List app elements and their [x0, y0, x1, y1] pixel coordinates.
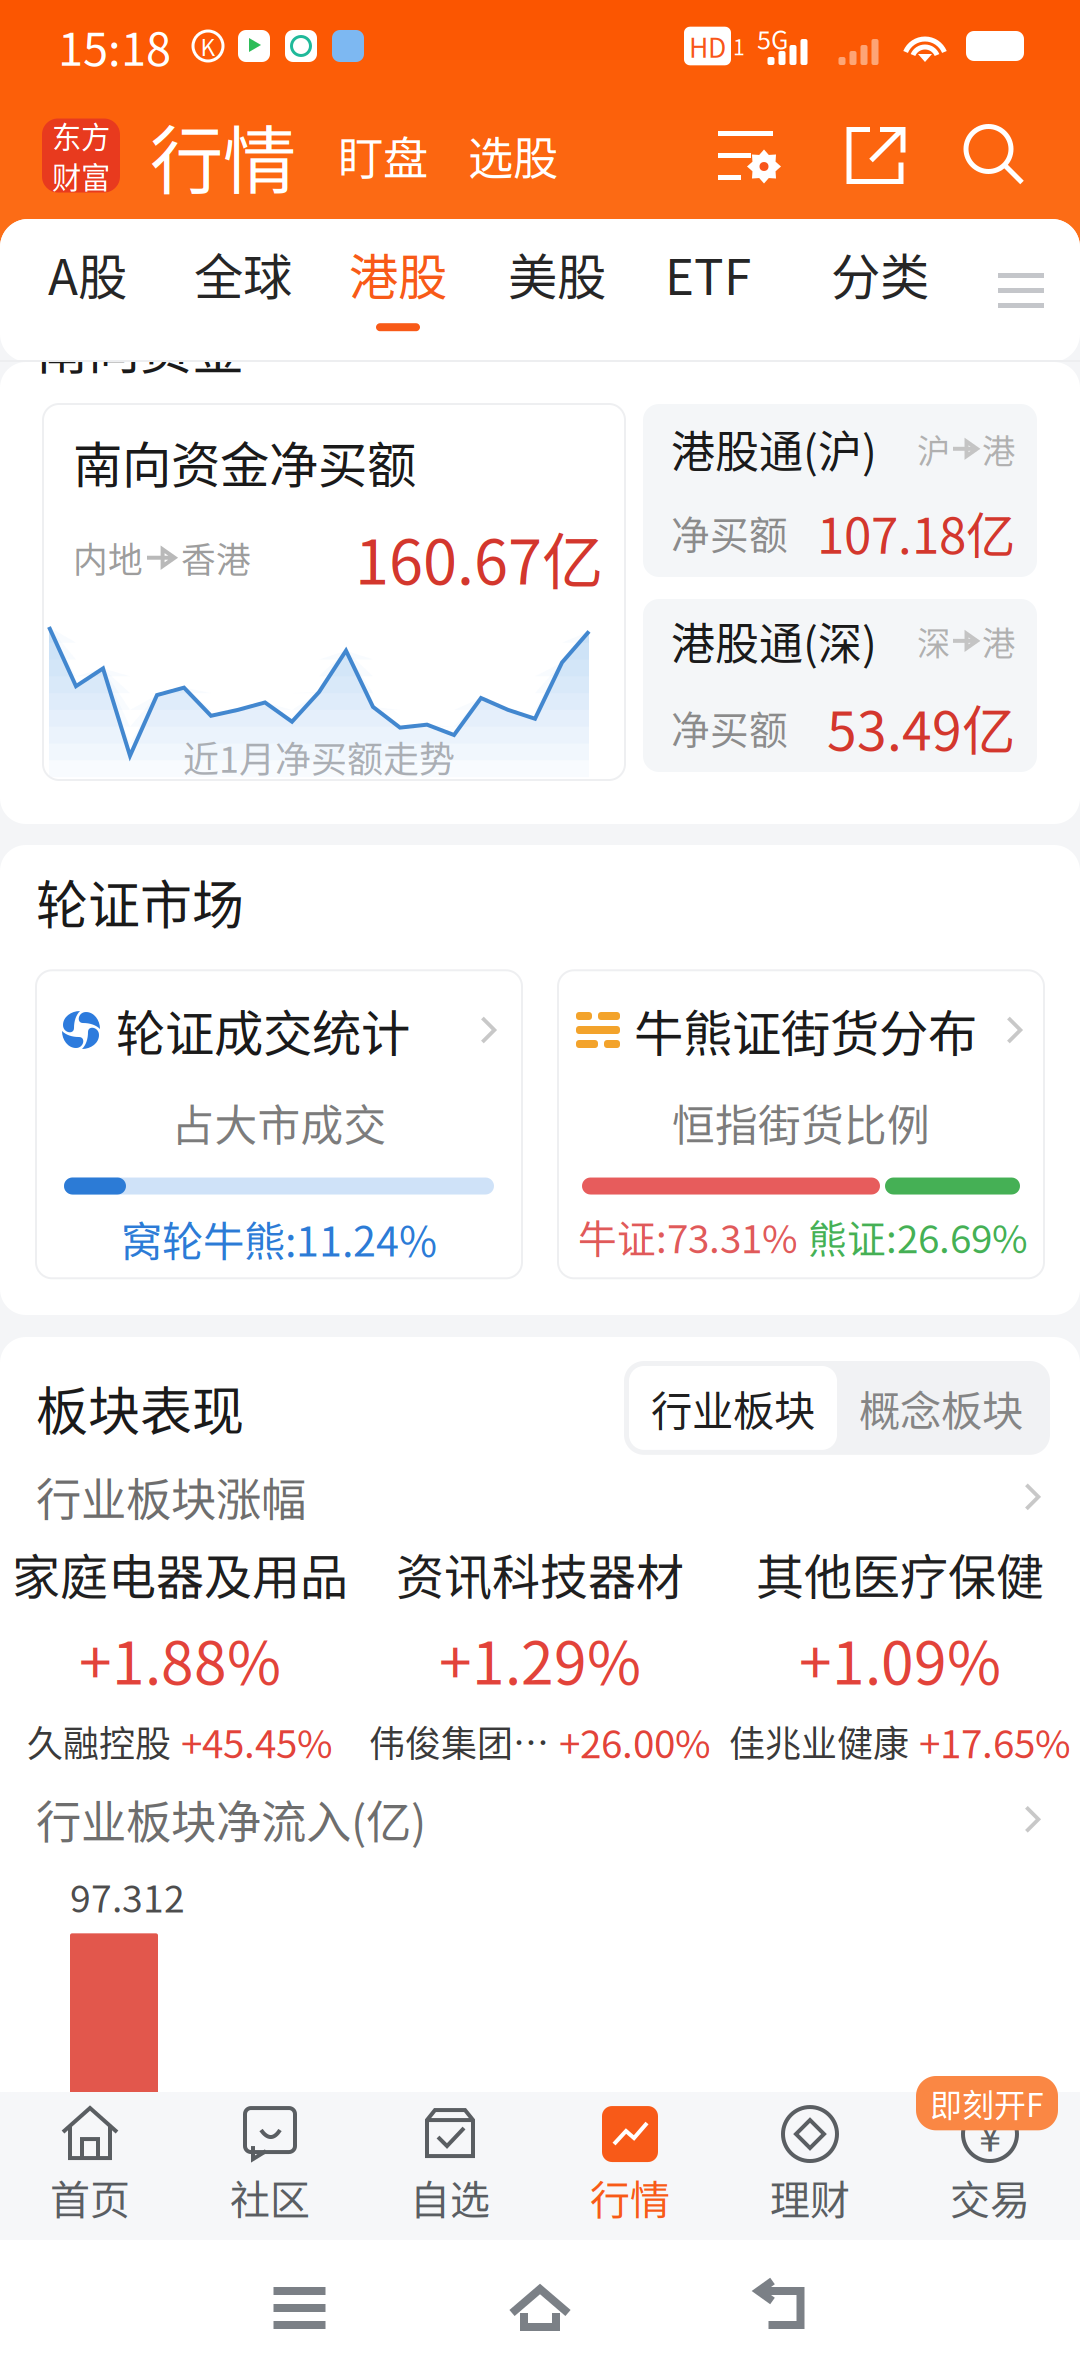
button[interactable]: ETF	[665, 219, 751, 362]
button[interactable]: 理财	[720, 2092, 900, 2240]
staticText: +26.00%	[559, 1713, 711, 1769]
staticText: 160.67亿	[355, 513, 603, 602]
staticText: 香港	[181, 533, 251, 583]
button[interactable]: 行情	[540, 2092, 720, 2240]
staticText: 深	[917, 617, 950, 665]
staticText: 南向资金净买额	[73, 426, 416, 497]
staticText: 社区	[230, 2168, 310, 2226]
staticText: 净买额	[671, 699, 788, 755]
staticText: ETF	[665, 238, 751, 309]
staticText: +1.09%	[799, 1616, 1001, 1701]
staticText: 行业板块涨幅	[36, 1464, 306, 1530]
button[interactable]: 港股	[349, 219, 447, 362]
staticText: 行情	[150, 102, 296, 209]
staticText: 港股通(沪)	[671, 417, 877, 481]
staticText: 久融控股	[27, 1715, 171, 1767]
staticText: 选股	[468, 123, 558, 188]
staticText: +45.45%	[181, 1713, 333, 1769]
staticText: 首页	[50, 2168, 130, 2226]
staticText: 牛证:73.31%	[578, 1208, 798, 1264]
staticText: 港股通(深)	[671, 609, 877, 673]
staticText: 15:18	[58, 13, 171, 79]
button[interactable]: 分享	[846, 126, 904, 184]
staticText: 熊证:26.69%	[808, 1208, 1028, 1264]
staticText: 占大市成交	[171, 1092, 386, 1153]
button[interactable]: 自选	[360, 2092, 540, 2240]
button[interactable]: 搜索	[966, 126, 1024, 184]
staticText: 行业板块	[651, 1378, 815, 1438]
staticText: 佳兆业健康	[729, 1715, 909, 1767]
button[interactable]: 最近任务	[243, 2257, 355, 2359]
button[interactable]: 分类	[831, 219, 929, 362]
staticText: +1.88%	[79, 1616, 281, 1701]
button[interactable]: 全部分类	[984, 220, 1058, 360]
button[interactable]: 筛选	[716, 126, 780, 184]
staticText: 美股	[508, 238, 606, 309]
staticText: 全球	[194, 238, 292, 309]
staticText: 行业板块净流入(亿)	[36, 1786, 426, 1852]
staticText: 恒指街货比例	[672, 1092, 930, 1153]
staticText: 伟俊集团…	[369, 1715, 549, 1767]
button[interactable]: 港股通(沪)	[643, 404, 1037, 577]
staticText: +17.65%	[919, 1713, 1071, 1769]
staticText: 交易	[950, 2168, 1030, 2226]
staticText: 南向资金	[36, 309, 244, 384]
staticText: 概念板块	[859, 1378, 1023, 1438]
staticText: A股	[48, 238, 127, 309]
staticText: 轮证成交统计	[116, 994, 410, 1066]
staticText: 东方	[52, 114, 110, 156]
button[interactable]: 行业板块净流入(亿)	[0, 1769, 1080, 1869]
staticText: 港股	[349, 238, 447, 309]
button[interactable]: A股	[48, 219, 127, 362]
staticText: 107.18亿	[817, 497, 1015, 568]
button[interactable]: ¥	[900, 2092, 1080, 2240]
staticText: 自选	[410, 2168, 490, 2226]
staticText: 近1月净买额走势	[183, 731, 455, 783]
button[interactable]: 资讯科技器材	[360, 1539, 720, 1769]
staticText: 资讯科技器材	[396, 1539, 684, 1608]
button[interactable]: 轮证成交统计	[36, 970, 522, 1278]
button[interactable]: 家庭电器及用品	[0, 1539, 360, 1769]
button[interactable]: 牛熊证街货分布	[558, 970, 1044, 1278]
staticText: 53.49亿	[827, 689, 1015, 766]
staticText: 内地	[73, 533, 143, 583]
staticText: 轮证市场	[36, 864, 244, 939]
staticText: +1.29%	[439, 1616, 641, 1701]
button[interactable]: 首页	[0, 2092, 180, 2240]
button[interactable]: 东方财富	[42, 118, 120, 192]
button[interactable]: 行业板块	[629, 1366, 837, 1450]
staticText: HD	[689, 27, 726, 65]
button[interactable]: 港股通(深)	[643, 599, 1037, 772]
button[interactable]: 全球	[194, 219, 292, 362]
staticText: 港	[982, 425, 1015, 473]
staticText: 5G	[757, 20, 788, 57]
staticText: ¥	[979, 2105, 1001, 2163]
staticText: 1	[733, 31, 745, 61]
staticText: 净买额	[671, 504, 788, 560]
staticText: 财富	[52, 154, 110, 197]
staticText: K	[200, 30, 215, 62]
staticText: 港	[982, 617, 1015, 665]
staticText: 牛熊证街货分布	[634, 994, 977, 1066]
staticText: 盯盘	[338, 123, 428, 188]
staticText: 板块表现	[36, 1370, 244, 1446]
staticText: 分类	[831, 238, 929, 309]
staticText: 97.312	[70, 1869, 185, 1923]
button[interactable]: 主屏幕	[479, 2255, 601, 2361]
staticText: 行情	[590, 2168, 670, 2226]
staticText: 窝轮牛熊:11.24%	[121, 1208, 437, 1268]
button[interactable]: 行业板块涨幅	[0, 1455, 1080, 1539]
staticText: 家庭电器及用品	[12, 1539, 348, 1608]
staticText: 沪	[917, 425, 950, 473]
button[interactable]: 其他医疗保健	[720, 1539, 1080, 1769]
button[interactable]: 南向资金净买额	[43, 404, 625, 780]
button[interactable]: 社区	[180, 2092, 360, 2240]
button[interactable]: 美股	[508, 219, 606, 362]
staticText: 其他医疗保健	[756, 1539, 1044, 1608]
staticText: 即刻开F	[930, 2080, 1044, 2126]
button[interactable]: 返回	[724, 2255, 836, 2361]
button[interactable]: 概念板块	[837, 1366, 1045, 1450]
staticText: 理财	[770, 2168, 850, 2226]
